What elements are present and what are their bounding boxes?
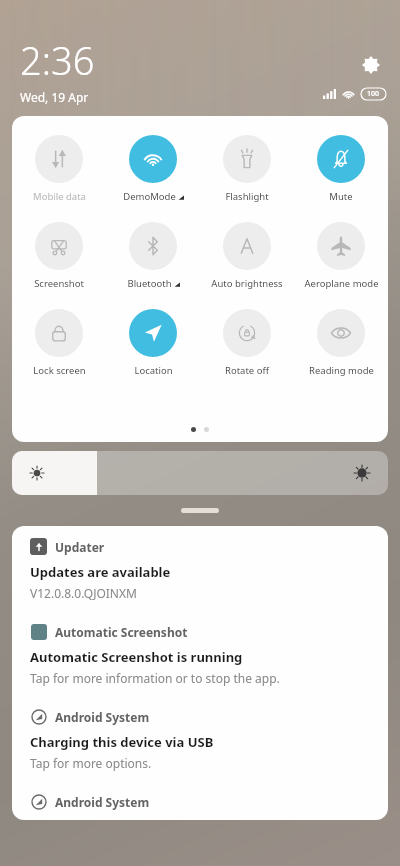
button[interactable]: Bluetooth (106, 220, 200, 292)
button[interactable]: Rotate off (200, 307, 294, 379)
button[interactable]: Mobile data (12, 133, 106, 205)
button[interactable]: Settings (356, 50, 386, 80)
button[interactable]: Auto brightness (200, 220, 294, 292)
staticText: Updates are available (30, 563, 171, 581)
staticText: Auto brightness (211, 277, 283, 290)
button[interactable]: DemoMode (106, 133, 200, 205)
staticText: Mobile data (33, 190, 86, 203)
button[interactable]: Android System (12, 781, 388, 820)
button[interactable]: Mute (294, 133, 388, 205)
staticText: Mute (329, 190, 353, 203)
button[interactable]: Android System (12, 696, 388, 781)
staticText: 2:36 (20, 34, 95, 86)
staticText: Bluetooth (127, 277, 172, 290)
staticText: DemoMode (123, 190, 176, 203)
staticText: Wed, 19 Apr (20, 89, 89, 105)
staticText: Reading mode (309, 364, 374, 377)
staticText: Charging this device via USB (30, 733, 214, 751)
staticText: V12.0.8.0.QJOINXM (30, 585, 137, 601)
staticText: Flashlight (225, 190, 269, 203)
staticText: Tap for more information or to stop the … (30, 670, 280, 686)
staticText: Aeroplane mode (304, 277, 379, 290)
staticText: Lock screen (33, 364, 86, 377)
button[interactable]: Screenshot (12, 220, 106, 292)
button[interactable]: Flashlight (200, 133, 294, 205)
button[interactable]: Automatic Screenshot (12, 611, 388, 696)
staticText: Updater (55, 539, 105, 555)
staticText: 100 (367, 89, 380, 99)
staticText: Screenshot (34, 277, 84, 290)
button[interactable]: Location (106, 307, 200, 379)
button[interactable]: Reading mode (294, 307, 388, 379)
button[interactable]: Updater (12, 526, 388, 611)
button[interactable]: Lock screen (12, 307, 106, 379)
staticText: Rotate off (225, 364, 269, 377)
staticText: Android System (55, 709, 150, 725)
staticText: Android System (55, 794, 150, 810)
staticText: Tap for more options. (30, 755, 152, 771)
staticText: Automatic Screenshot (55, 624, 188, 640)
staticText: Location (134, 364, 173, 377)
staticText: Automatic Screenshot is running (30, 648, 243, 666)
button[interactable]: Aeroplane mode (294, 220, 388, 292)
button[interactable]: Brightness (12, 451, 388, 495)
